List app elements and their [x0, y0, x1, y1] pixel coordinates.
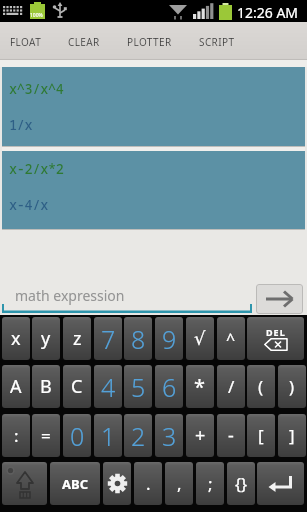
button[interactable]: (	[247, 365, 275, 408]
staticText: :	[14, 424, 19, 447]
staticText: x^3/x^4	[9, 80, 64, 98]
button[interactable]: .	[134, 462, 162, 505]
staticText: {}	[235, 473, 248, 495]
button[interactable]: C	[63, 365, 91, 408]
button[interactable]: ,	[165, 462, 193, 505]
button[interactable]: /	[217, 365, 245, 408]
button[interactable]	[2, 151, 305, 229]
staticText: )	[289, 375, 295, 398]
staticText: =	[41, 424, 51, 447]
button[interactable]: 0	[63, 414, 91, 457]
staticText: √	[194, 328, 206, 349]
staticText: 7	[101, 322, 116, 356]
staticText: x	[11, 326, 21, 351]
staticText: B	[40, 374, 52, 399]
button[interactable]: +	[186, 414, 214, 457]
button[interactable]: 5	[124, 365, 152, 408]
button[interactable]: {}	[227, 462, 255, 505]
button[interactable]: SCRIPT	[199, 30, 247, 54]
button[interactable]: ^	[217, 317, 245, 360]
button[interactable]: 9	[155, 317, 183, 360]
button[interactable]: CLEAR	[68, 30, 112, 54]
staticText: +	[195, 423, 206, 448]
staticText: math expression	[15, 286, 125, 305]
button[interactable]	[257, 462, 304, 505]
staticText: 3	[162, 419, 177, 453]
button[interactable]	[256, 284, 303, 314]
button[interactable]	[2, 280, 252, 313]
button[interactable]: PLOTTER	[127, 30, 183, 54]
staticText: C	[71, 374, 83, 399]
staticText: 5	[131, 370, 146, 404]
staticText: y	[41, 326, 51, 351]
button[interactable]: z	[63, 317, 91, 360]
staticText: *	[194, 373, 206, 400]
button[interactable]: 2	[124, 414, 152, 457]
button[interactable]: :	[2, 414, 30, 457]
button[interactable]: 3	[155, 414, 183, 457]
button[interactable]	[103, 462, 131, 505]
button[interactable]: A	[2, 365, 30, 408]
button[interactable]: DEL	[247, 317, 304, 360]
button[interactable]	[2, 462, 47, 505]
staticText: 8	[131, 322, 146, 356]
button[interactable]: 8	[124, 317, 152, 360]
staticText: ^	[226, 328, 236, 350]
staticText: A	[10, 374, 22, 399]
staticText: -	[228, 423, 234, 448]
button[interactable]: √	[186, 317, 214, 360]
staticText: .	[146, 472, 151, 495]
staticText: /	[228, 375, 235, 398]
button[interactable]: 7	[94, 317, 122, 360]
button[interactable]: B	[32, 365, 60, 408]
staticText: ,	[177, 472, 182, 495]
staticText: ]	[289, 424, 295, 447]
button[interactable]: =	[32, 414, 60, 457]
staticText: 0	[70, 419, 85, 453]
staticText: PLOTTER	[127, 35, 172, 49]
button[interactable]	[2, 67, 305, 146]
staticText: x-4/x	[9, 196, 48, 214]
button[interactable]: *	[186, 365, 214, 408]
staticText: ABC	[62, 475, 88, 493]
staticText: 4	[101, 370, 116, 404]
staticText: (	[258, 375, 264, 398]
staticText: z	[73, 326, 82, 351]
button[interactable]: 1	[94, 414, 122, 457]
staticText: 6	[162, 370, 177, 404]
button[interactable]: -	[217, 414, 245, 457]
staticText: 2	[131, 419, 146, 453]
staticText: 1/x	[9, 116, 33, 134]
staticText: DEL	[266, 326, 286, 338]
staticText: ;	[208, 472, 213, 495]
staticText: [	[258, 424, 264, 447]
button[interactable]: y	[32, 317, 60, 360]
button[interactable]: x	[2, 317, 30, 360]
button[interactable]: ;	[196, 462, 224, 505]
button[interactable]: 6	[155, 365, 183, 408]
button[interactable]: )	[278, 365, 306, 408]
staticText: CLEAR	[68, 35, 100, 49]
button[interactable]: ABC	[50, 462, 100, 505]
staticText: 100%	[30, 12, 43, 19]
staticText: SCRIPT	[199, 35, 235, 49]
staticText: 1	[101, 419, 116, 453]
button[interactable]: FLOAT	[10, 30, 54, 54]
staticText: x-2/x*2	[9, 160, 64, 178]
button[interactable]: ]	[278, 414, 306, 457]
staticText: 9	[162, 322, 177, 356]
staticText: FLOAT	[10, 35, 42, 49]
staticText: 12:26 AM	[237, 3, 299, 22]
button[interactable]: 4	[94, 365, 122, 408]
button[interactable]: [	[247, 414, 275, 457]
